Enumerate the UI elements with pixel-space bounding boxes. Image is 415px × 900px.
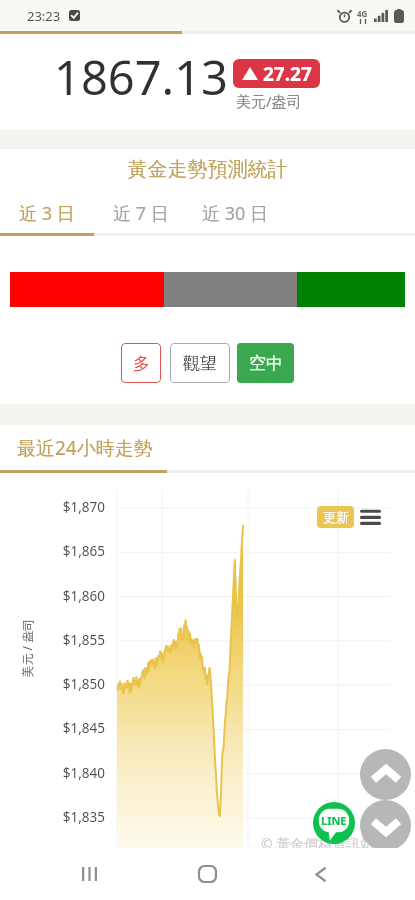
button[interactable]: 多 [121, 343, 161, 383]
button[interactable]: 27.27 [233, 59, 320, 88]
button[interactable]: 觀望 [170, 343, 230, 383]
button[interactable]: Back [291, 848, 351, 900]
staticText: 最近24小時走勢 [17, 435, 153, 461]
button[interactable]: Menu [360, 509, 381, 525]
staticText: $1,845 [62, 719, 105, 737]
staticText: $1,865 [62, 542, 105, 560]
button[interactable]: Scroll up [360, 749, 411, 800]
staticText: 多 [133, 353, 150, 374]
staticText: $1,870 [62, 498, 105, 516]
staticText: $1,855 [62, 631, 105, 649]
button[interactable]: 近 7 日 [94, 200, 188, 226]
staticText: $1,850 [62, 675, 105, 693]
staticText: 觀望 [183, 353, 217, 374]
staticText: 美元 / 盎司 [18, 618, 34, 677]
button[interactable]: Scroll down [360, 800, 411, 851]
button[interactable]: 空中 [237, 343, 294, 383]
staticText: 更新 [323, 509, 349, 525]
staticText: 美元/盎司 [236, 91, 302, 111]
button[interactable]: 更新 [317, 506, 354, 528]
button[interactable]: LINE [313, 802, 355, 844]
staticText: 空中 [249, 353, 283, 374]
staticText: 近 30 日 [202, 201, 268, 226]
button[interactable]: Home [177, 848, 237, 900]
staticText: 4G [357, 8, 368, 19]
staticText: $1,860 [62, 587, 105, 605]
staticText: 近 3 日 [19, 201, 75, 226]
staticText: $1,840 [62, 764, 105, 782]
staticText: $1,835 [62, 808, 105, 826]
button[interactable]: 近 3 日 [0, 200, 94, 226]
staticText: 23:23 [27, 7, 61, 25]
button[interactable]: 近 30 日 [188, 200, 282, 226]
staticText: 黃金走勢預測統計 [0, 157, 415, 182]
staticText: 近 7 日 [113, 201, 169, 226]
staticText: 1867.13 [54, 45, 228, 109]
staticText: LINE [321, 813, 347, 828]
button[interactable]: Recents [59, 848, 119, 900]
staticText: 27.27 [263, 61, 312, 87]
staticText: © 黃金價格資訊站 [261, 834, 375, 853]
